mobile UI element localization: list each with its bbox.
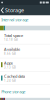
button[interactable]: Total space (0, 30, 50, 44)
staticText: Internal storage (1, 17, 28, 22)
staticText: Storage (5, 7, 24, 14)
staticText: 14.18 GB (4, 38, 18, 41)
staticText: 3.13 GB (4, 66, 16, 69)
button[interactable]: Cached data (0, 72, 50, 85)
button[interactable]: Apps (0, 58, 50, 71)
staticText: Apps (4, 60, 13, 66)
staticText: Phone storage (1, 89, 25, 94)
button[interactable]: Available (0, 44, 50, 58)
staticText: Available (4, 47, 20, 52)
button[interactable]: Back (0, 5, 5, 15)
staticText: Total space (4, 33, 23, 38)
staticText: Cached data (4, 74, 25, 79)
staticText: 1.24 GB (4, 79, 16, 82)
staticText: 8.66 GB (4, 52, 16, 55)
